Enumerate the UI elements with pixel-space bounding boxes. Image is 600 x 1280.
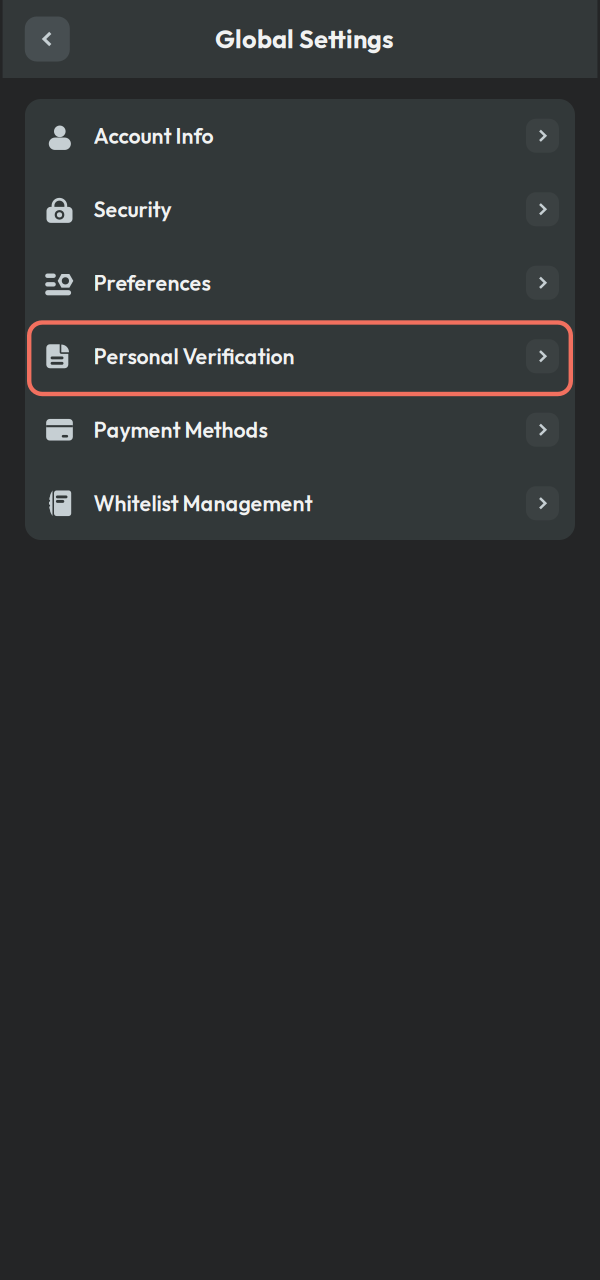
staticText: Account Info (93, 122, 213, 149)
button[interactable]: Security (25, 172, 575, 246)
staticText: Global Settings (215, 23, 394, 55)
button[interactable]: Account Info (25, 99, 575, 172)
button[interactable]: Back (25, 16, 70, 61)
staticText: Preferences (93, 269, 210, 296)
button[interactable]: Personal Verification (25, 319, 575, 393)
button[interactable]: Payment Methods (25, 393, 575, 466)
staticText: Security (93, 196, 171, 223)
button[interactable]: Whitelist Management (25, 466, 575, 540)
staticText: Personal Verification (93, 343, 294, 370)
button[interactable]: Preferences (25, 246, 575, 319)
staticText: Payment Methods (93, 416, 267, 443)
staticText: Whitelist Management (93, 490, 312, 517)
